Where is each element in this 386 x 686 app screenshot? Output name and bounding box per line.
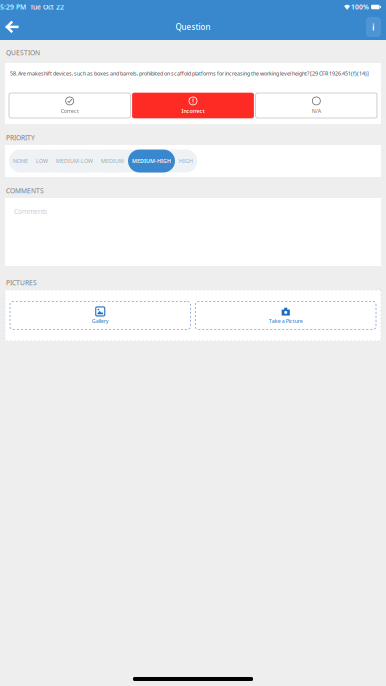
staticText: PRIORITY — [6, 133, 35, 142]
staticText: Incorrect — [181, 107, 204, 115]
staticText: MEDIUM-LOW — [56, 157, 93, 165]
staticText: Take a Picture — [269, 317, 303, 325]
staticText: Comments — [14, 207, 47, 216]
staticText: i — [372, 21, 375, 33]
staticText: N/A — [312, 107, 321, 115]
button[interactable]: N/A — [256, 93, 377, 118]
button[interactable]: LOW — [32, 149, 52, 172]
button[interactable]: MEDIUM-LOW — [52, 149, 97, 172]
staticText: LOW — [36, 157, 48, 165]
button[interactable]: MEDIUM-HIGH — [128, 149, 175, 172]
button[interactable]: MEDIUM — [97, 149, 128, 172]
button[interactable]: Gallery — [10, 301, 190, 329]
staticText: Gallery — [92, 317, 109, 325]
staticText: COMMENTS — [6, 186, 44, 195]
button[interactable]: HIGH — [175, 149, 197, 172]
staticText: 100% — [351, 3, 369, 11]
staticText: 5:29 PM — [0, 3, 26, 11]
staticText: Question — [175, 22, 210, 32]
staticText: 58. Are makeshift devices, such as boxes… — [10, 70, 369, 77]
button[interactable]: Information — [366, 17, 381, 37]
staticText: PICTURES — [6, 278, 37, 287]
button[interactable]: Back — [1, 14, 23, 40]
button[interactable]: Take a Picture — [195, 301, 376, 329]
staticText: HIGH — [179, 157, 193, 165]
button[interactable]: NONE — [9, 149, 32, 172]
staticText: MEDIUM-HIGH — [132, 157, 171, 165]
staticText: QUESTION — [6, 48, 40, 57]
button[interactable]: Correct — [9, 93, 130, 118]
staticText: Correct — [61, 107, 79, 115]
button[interactable]: Incorrect — [132, 93, 254, 118]
staticText: NONE — [13, 157, 28, 165]
staticText: Tue Oct 22 — [30, 3, 64, 11]
staticText: MEDIUM — [101, 157, 124, 165]
